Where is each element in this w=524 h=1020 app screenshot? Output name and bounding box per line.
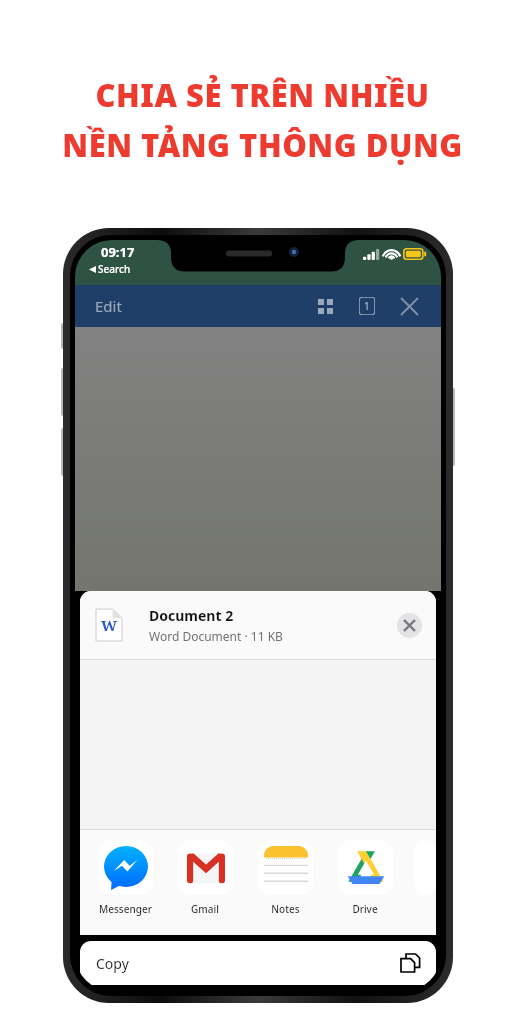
staticText: Copy [96,954,129,973]
staticText: Edit [95,296,122,316]
staticText: Messenger [99,902,152,916]
staticText: Word Document · 11 KB [149,628,283,644]
staticText: CHIA SẺ TRÊN NHIỀU [95,74,430,116]
staticText: Document 2 [149,606,234,625]
staticText: Drive [352,902,378,916]
staticText: Search [98,262,131,276]
button[interactable]: Copy [80,941,436,985]
staticText: Gmail [191,902,219,916]
button[interactable]: Close [397,613,422,638]
button[interactable]: Edit [91,292,126,320]
staticText: 09:17 [101,243,135,261]
button[interactable]: Drive [334,840,396,916]
button[interactable]: Thumbnails [309,290,341,322]
staticText: Notes [271,902,300,916]
button[interactable]: W [80,591,436,659]
button[interactable]: Page 1 [351,290,383,322]
button[interactable]: Notes [254,840,316,916]
button[interactable]: Close [393,290,425,322]
button[interactable]: Gmail [174,840,236,916]
button[interactable]: Messenger [94,840,156,916]
staticText: W [101,615,118,635]
staticText: NỀN TẢNG THÔNG DỤNG [62,124,463,166]
staticText: 1 [364,299,370,313]
